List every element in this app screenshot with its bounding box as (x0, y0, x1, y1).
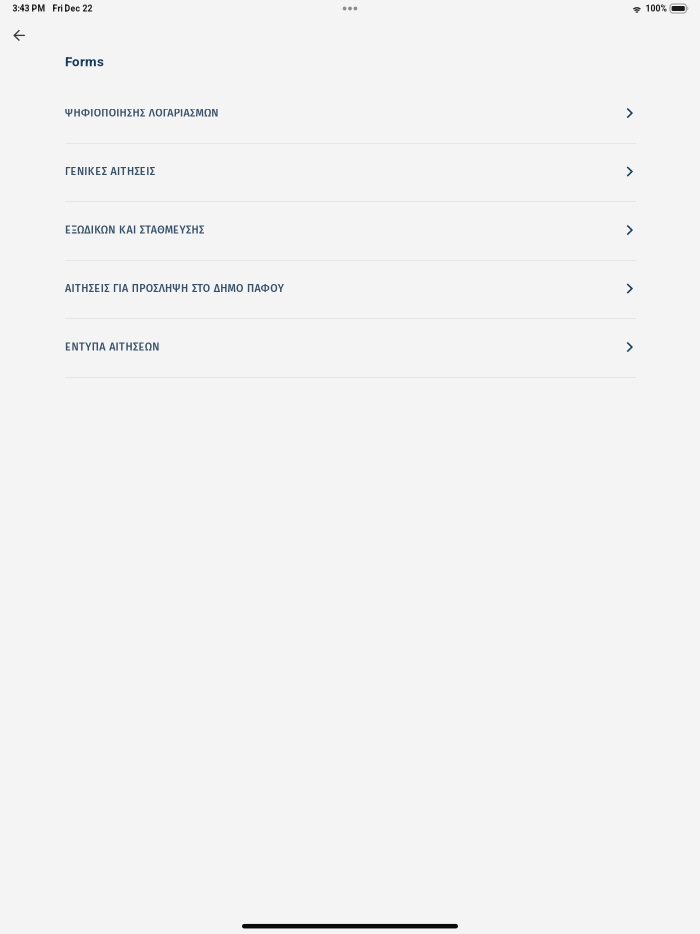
button[interactable]: ΕΝΤΥΠΑ ΑΙΤΗΣΕΩΝ (65, 318, 636, 376)
button[interactable]: Back (0, 20, 39, 50)
staticText: ΕΞΩΔΙΚΩΝ ΚΑΙ ΣΤΑΘΜΕΥΣΗΣ (65, 224, 204, 236)
staticText: Fri Dec 22 (52, 3, 92, 14)
staticText: Forms (65, 54, 104, 70)
staticText: ΓΕΝΙΚΕΣ ΑΙΤΗΣΕΙΣ (65, 165, 155, 178)
button[interactable]: ΓΕΝΙΚΕΣ ΑΙΤΗΣΕΙΣ (65, 142, 636, 201)
button[interactable]: ΕΞΩΔΙΚΩΝ ΚΑΙ ΣΤΑΘΜΕΥΣΗΣ (65, 201, 636, 259)
staticText: ΨΗΦΙΟΠΟΙΗΣΗΣ ΛΟΓΑΡΙΑΣΜΩΝ (65, 107, 218, 119)
staticText: 100% (645, 3, 666, 14)
button[interactable]: ΨΗΦΙΟΠΟΙΗΣΗΣ ΛΟΓΑΡΙΑΣΜΩΝ (65, 84, 636, 142)
staticText: ΕΝΤΥΠΑ ΑΙΤΗΣΕΩΝ (65, 341, 159, 353)
staticText: ΑΙΤΗΣΕΙΣ ΓΙΑ ΠΡΟΣΛΗΨΗ ΣΤΟ ΔΗΜΟ ΠΑΦΟΥ (65, 282, 284, 295)
button[interactable]: ΑΙΤΗΣΕΙΣ ΓΙΑ ΠΡΟΣΛΗΨΗ ΣΤΟ ΔΗΜΟ ΠΑΦΟΥ (65, 259, 636, 318)
staticText: 3:43 PM (12, 3, 45, 14)
